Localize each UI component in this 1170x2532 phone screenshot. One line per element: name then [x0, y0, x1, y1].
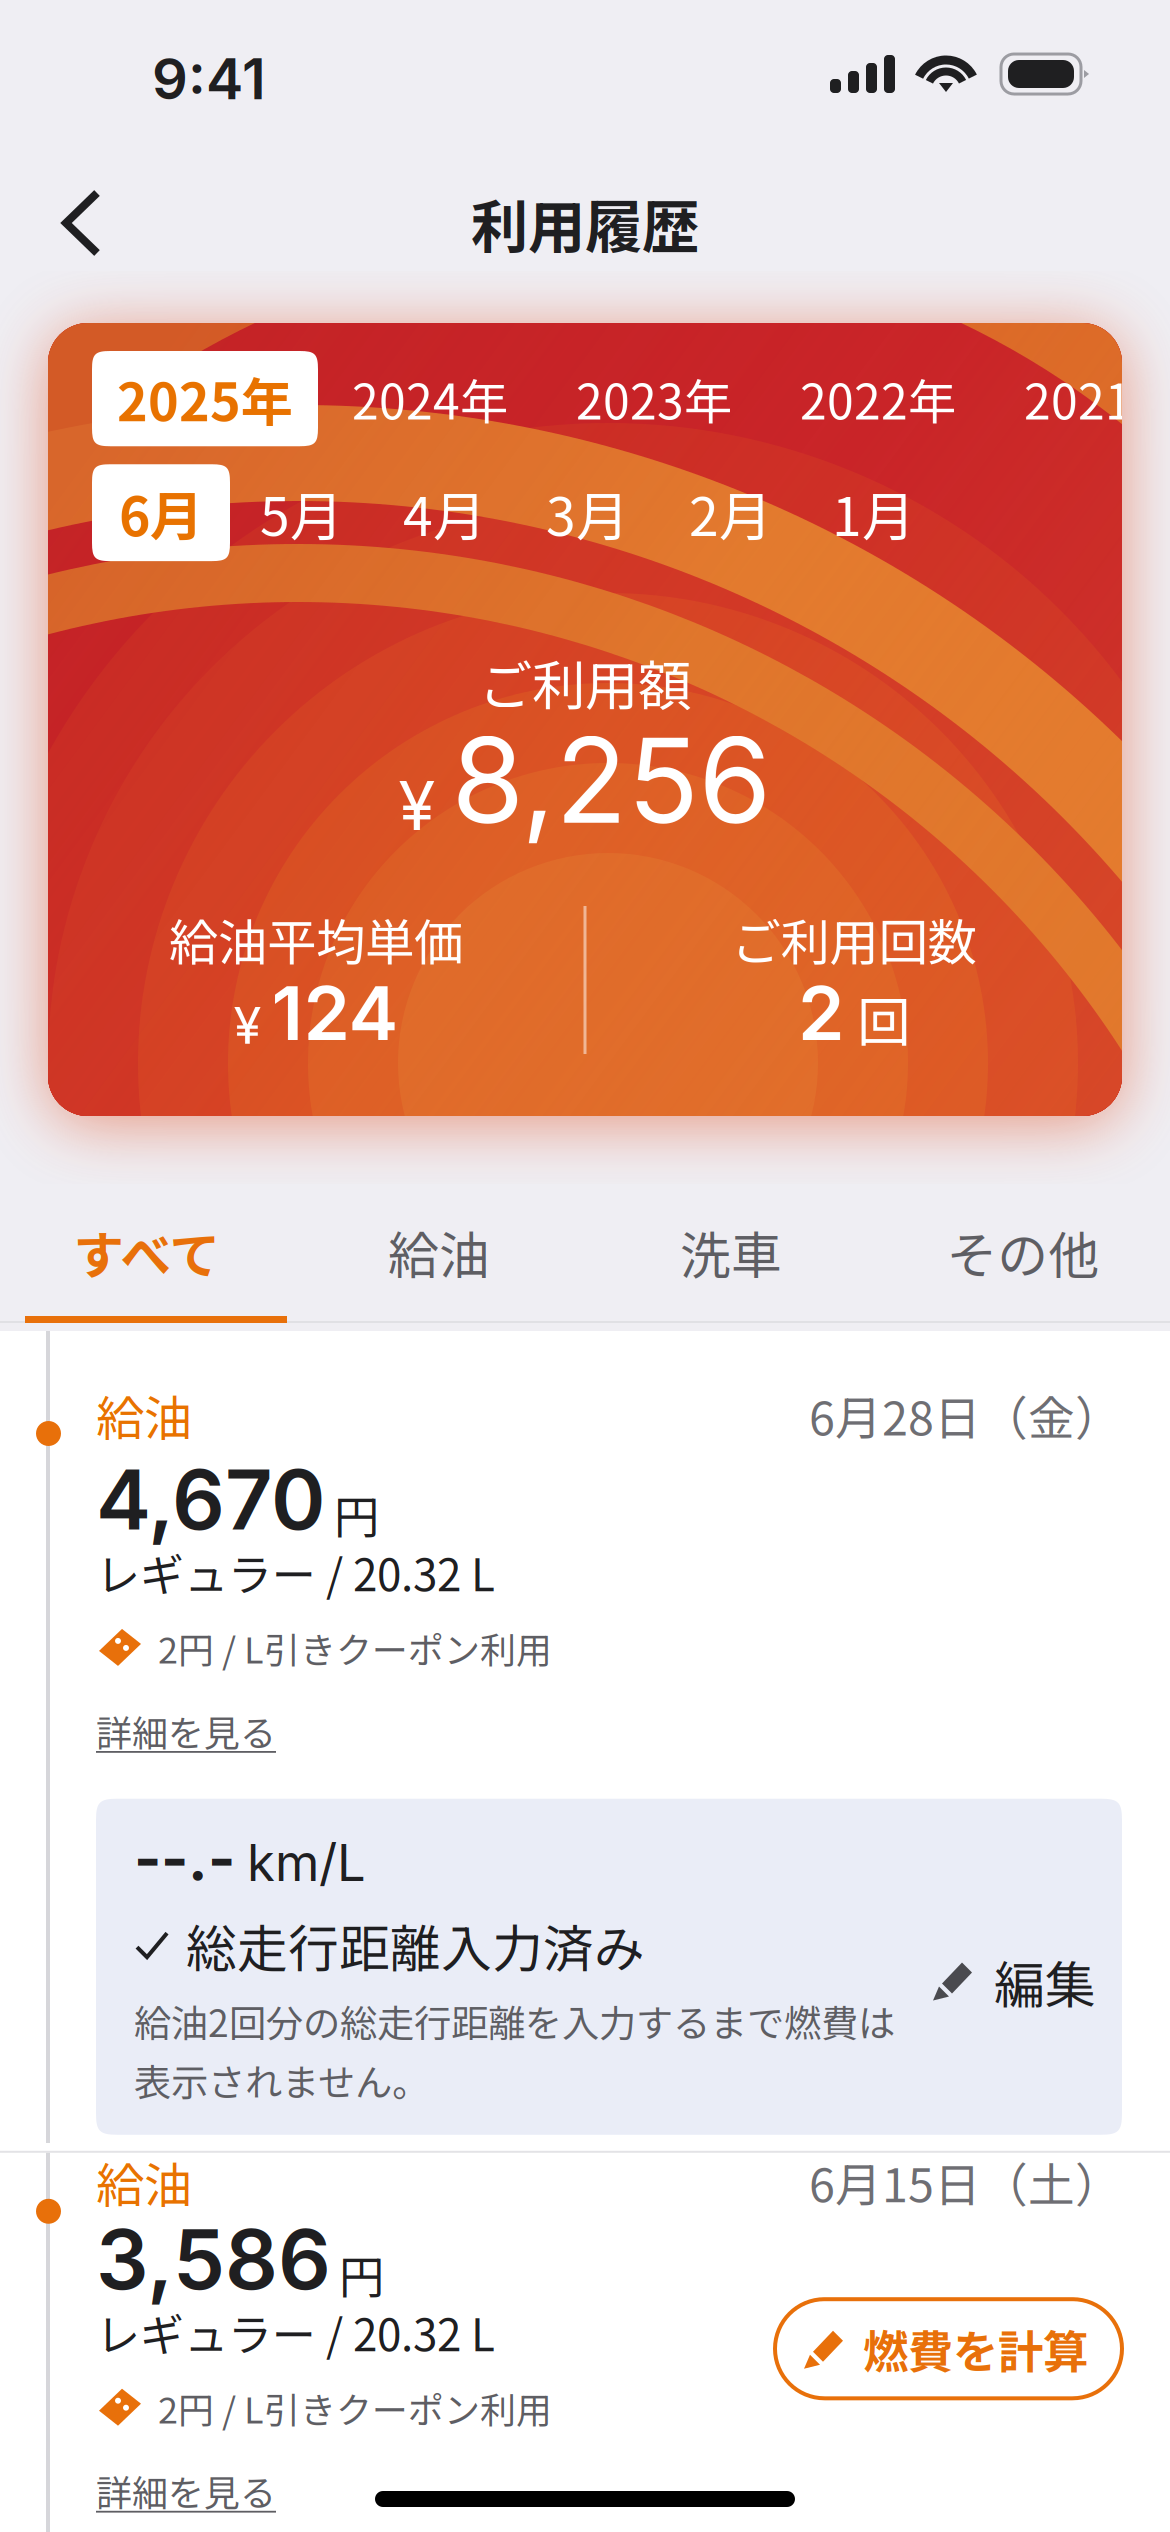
button[interactable]: 2022年 [766, 353, 990, 444]
button[interactable]: 2023年 [542, 353, 766, 444]
staticText: 洗車 [680, 1221, 782, 1283]
staticText: 円 [334, 1486, 379, 1541]
staticText: すべて [73, 1221, 220, 1283]
staticText: ¥ [398, 772, 435, 840]
staticText: 9:41 [152, 50, 266, 107]
staticText: 2022年 [800, 369, 956, 428]
staticText: 5月 [260, 480, 343, 545]
staticText: 1月 [832, 480, 915, 545]
staticText: 編集 [994, 1951, 1096, 2012]
staticText: 給油平均単価 [169, 909, 463, 969]
button[interactable]: 戻る [47, 173, 157, 273]
staticText: その他 [946, 1221, 1099, 1283]
staticText: 6月28日（金） [809, 1387, 1122, 1444]
button[interactable]: 詳細を見る [96, 2430, 276, 2532]
staticText: 2円 / L引きクーポン利用 [158, 2386, 552, 2430]
button[interactable]: 1月 [802, 464, 945, 561]
staticText: 表示されません。 [134, 2057, 429, 2103]
button[interactable]: 給油 [293, 1188, 585, 1316]
staticText: 3,586 [96, 2217, 331, 2301]
staticText: 給油 [388, 1221, 490, 1283]
button[interactable]: 燃費を計算 [775, 2299, 1122, 2398]
button[interactable]: すべて [1, 1188, 293, 1316]
staticText: --.- [134, 1829, 235, 1888]
staticText: ¥ [233, 999, 261, 1051]
button[interactable]: 2021年 [990, 353, 1170, 444]
staticText: 4月 [403, 480, 486, 545]
staticText: 2021年 [1024, 369, 1170, 428]
staticText: ご利用額 [479, 649, 691, 714]
staticText: 2円 / L引きクーポン利用 [158, 1626, 552, 1670]
staticText: ご利用回数 [731, 909, 976, 969]
staticText: 回 [857, 986, 910, 1051]
staticText: 燃費を計算 [863, 2321, 1088, 2376]
button[interactable]: 4月 [373, 464, 516, 561]
staticText: 詳細を見る [96, 1709, 276, 1753]
staticText: 詳細を見る [96, 2469, 276, 2512]
staticText: 6月 [119, 480, 203, 545]
button[interactable]: 編集 [930, 1799, 1122, 2012]
staticText: 124 [271, 975, 398, 1051]
staticText: km/L [247, 1837, 366, 1888]
button[interactable]: 2024年 [318, 353, 542, 444]
button[interactable]: 2月 [659, 464, 802, 561]
staticText: 2023年 [576, 369, 732, 428]
staticText: 2024年 [352, 369, 508, 428]
staticText: 8,256 [451, 720, 771, 840]
button[interactable]: 詳細を見る [96, 1670, 276, 1757]
button[interactable]: 3月 [516, 464, 659, 561]
staticText: レギュラー / 20.32 L [96, 2305, 495, 2359]
staticText: 総走行距離入力済み [186, 1914, 645, 1976]
button[interactable]: 洗車 [585, 1188, 877, 1316]
staticText: 給油2回分の総走行距離を入力するまで燃費は [134, 1998, 895, 2043]
staticText: 利用履歴 [471, 188, 699, 258]
staticText: 給油 [96, 1386, 192, 1444]
button[interactable]: 6月 [92, 464, 230, 561]
button[interactable]: その他 [877, 1188, 1169, 1316]
staticText: 6月15日（土） [809, 2154, 1122, 2210]
staticText: 3月 [546, 480, 629, 545]
button[interactable]: 2025年 [92, 351, 318, 446]
staticText: レギュラー / 20.32 L [96, 1545, 495, 1599]
button[interactable]: 5月 [230, 464, 373, 561]
staticText: 給油 [96, 2153, 192, 2211]
staticText: 2月 [689, 480, 772, 545]
staticText: 円 [339, 2246, 384, 2301]
staticText: 4,670 [96, 1457, 326, 1541]
staticText: 2025年 [117, 367, 293, 430]
staticText: 2 [798, 975, 845, 1051]
